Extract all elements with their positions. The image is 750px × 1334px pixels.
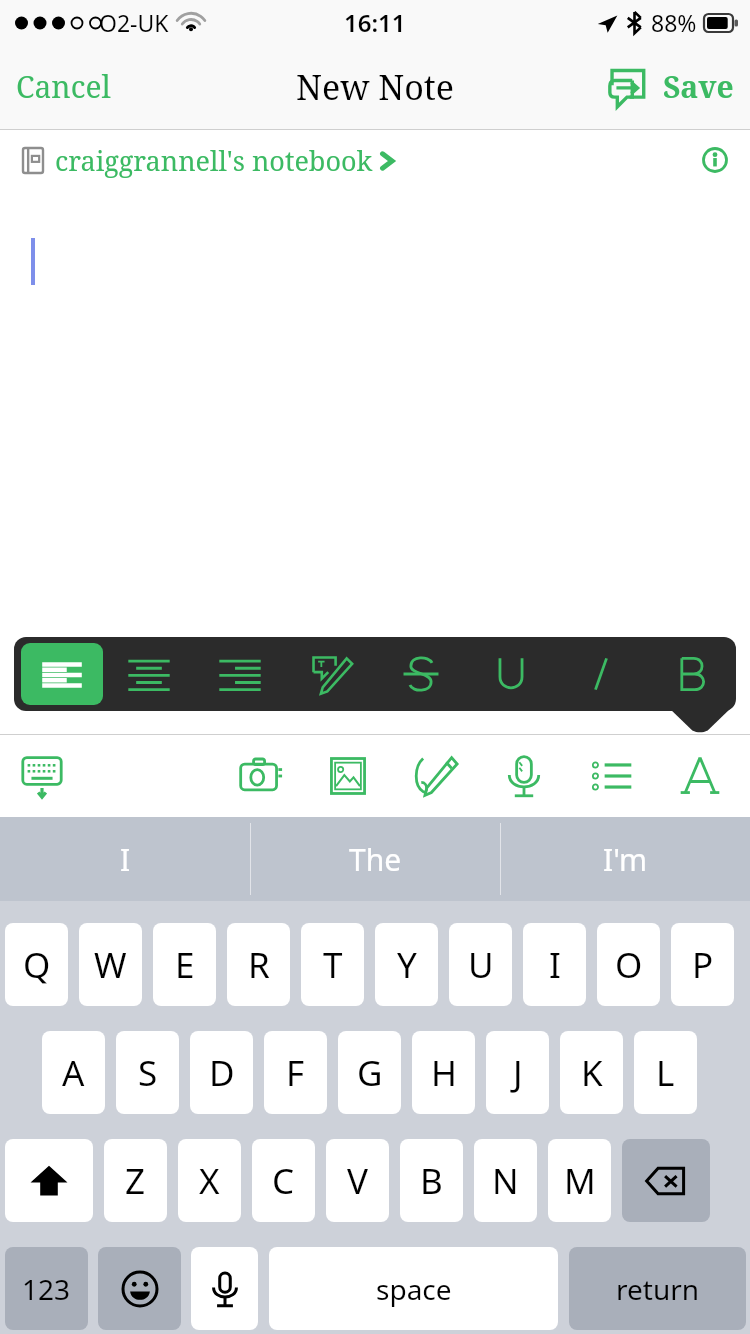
button[interactable]: Audio note	[480, 737, 568, 815]
staticText: O	[615, 941, 643, 989]
button[interactable]: Text format	[656, 737, 744, 815]
button[interactable]: Cancel	[0, 52, 127, 121]
button[interactable]: Delete	[622, 1139, 710, 1222]
button[interactable]: Camera	[216, 737, 304, 815]
button[interactable]: Share note	[599, 58, 655, 116]
staticText: J	[513, 1049, 523, 1097]
staticText: space	[376, 1270, 452, 1308]
button[interactable]: Checklist	[568, 737, 656, 815]
staticText: O2-UK	[99, 7, 169, 38]
staticText: N	[492, 1157, 519, 1205]
button[interactable]: The	[251, 817, 500, 901]
staticText: D	[209, 1049, 235, 1097]
button[interactable]: N	[474, 1139, 537, 1222]
button[interactable]: G	[338, 1031, 401, 1114]
button[interactable]: Align center	[103, 637, 194, 711]
staticText: H	[431, 1049, 457, 1097]
button[interactable]: M	[548, 1139, 611, 1222]
button[interactable]: I'm	[501, 817, 750, 901]
button[interactable]: Emoji	[98, 1247, 181, 1330]
button[interactable]: Hide keyboard	[8, 743, 76, 809]
staticText: Z	[125, 1157, 146, 1205]
button[interactable]: Bold	[646, 637, 736, 711]
staticText: return	[616, 1270, 700, 1308]
button[interactable]: U	[449, 923, 512, 1006]
staticText: Y	[397, 941, 417, 989]
staticText: X	[199, 1157, 220, 1205]
button[interactable]: L	[634, 1031, 697, 1114]
staticText: 123	[22, 1270, 71, 1308]
button[interactable]: W	[79, 923, 142, 1006]
staticText: M	[564, 1157, 596, 1205]
staticText: Cancel	[16, 66, 111, 107]
button[interactable]: X	[178, 1139, 241, 1222]
staticText: I	[120, 839, 131, 880]
button[interactable]: A	[42, 1031, 105, 1114]
staticText: K	[581, 1049, 603, 1097]
button[interactable]: Align right	[194, 637, 285, 711]
staticText: New Note	[296, 64, 454, 110]
button[interactable]: D	[190, 1031, 253, 1114]
staticText: W	[94, 941, 127, 989]
staticText: C	[272, 1157, 295, 1205]
staticText: G	[357, 1049, 383, 1097]
staticText: V	[347, 1157, 369, 1205]
staticText: T	[323, 941, 343, 989]
button[interactable]: T	[301, 923, 364, 1006]
button[interactable]: Y	[375, 923, 438, 1006]
staticText: Q	[23, 941, 51, 989]
button[interactable]: P	[671, 923, 734, 1006]
button[interactable]: craiggrannell's notebook	[0, 132, 416, 189]
staticText: 88%	[651, 7, 697, 38]
staticText: P	[692, 941, 714, 989]
button[interactable]: Save	[655, 52, 750, 121]
button[interactable]: Italic	[556, 637, 646, 711]
button[interactable]: Shift	[5, 1139, 93, 1222]
button[interactable]: K	[560, 1031, 623, 1114]
button[interactable]: return	[569, 1247, 746, 1330]
staticText: Save	[663, 66, 734, 107]
staticText: U	[468, 941, 494, 989]
staticText: B	[420, 1157, 443, 1205]
button[interactable]: F	[264, 1031, 327, 1114]
button[interactable]: E	[153, 923, 216, 1006]
staticText: L	[656, 1049, 675, 1097]
button[interactable]: Photos	[304, 737, 392, 815]
button[interactable]: B	[400, 1139, 463, 1222]
button[interactable]: Q	[5, 923, 68, 1006]
staticText: E	[175, 941, 195, 989]
button[interactable]: S	[116, 1031, 179, 1114]
button[interactable]: O	[597, 923, 660, 1006]
staticText: I'm	[603, 839, 648, 880]
button[interactable]: R	[227, 923, 290, 1006]
button[interactable]: J	[486, 1031, 549, 1114]
button[interactable]: Handwriting	[392, 737, 480, 815]
staticText: 16:11	[344, 6, 406, 39]
staticText: The	[349, 839, 402, 880]
button[interactable]: C	[252, 1139, 315, 1222]
staticText: I	[549, 941, 561, 989]
button[interactable]: Z	[104, 1139, 167, 1222]
button[interactable]: Note info	[680, 130, 750, 190]
button[interactable]: H	[412, 1031, 475, 1114]
button[interactable]: 123	[5, 1247, 88, 1330]
staticText: S	[138, 1049, 158, 1097]
staticText: R	[248, 941, 270, 989]
button[interactable]: I	[523, 923, 586, 1006]
button[interactable]: Strikethrough	[376, 637, 466, 711]
staticText: A	[62, 1049, 85, 1097]
button[interactable]: Underline	[466, 637, 556, 711]
button[interactable]: Highlight	[285, 637, 376, 711]
button[interactable]: I	[0, 817, 250, 901]
button[interactable]: Align left	[21, 643, 103, 705]
button[interactable]: V	[326, 1139, 389, 1222]
button[interactable]: Dictate	[191, 1247, 258, 1330]
staticText: craiggrannell's notebook	[55, 142, 373, 179]
button[interactable]: space	[269, 1247, 558, 1330]
staticText: F	[286, 1049, 305, 1097]
